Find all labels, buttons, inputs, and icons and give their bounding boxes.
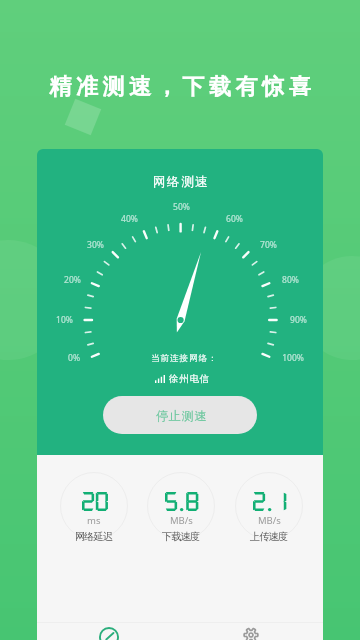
staticText: 80%: [282, 274, 299, 286]
staticText: 70%: [260, 239, 277, 251]
button[interactable]: Settings: [230, 622, 272, 640]
staticText: 90%: [290, 314, 307, 326]
staticText: MB/s: [258, 514, 281, 527]
staticText: 20%: [64, 274, 81, 286]
staticText: 60%: [226, 213, 243, 225]
staticText: 下载速度: [162, 530, 200, 543]
staticText: ms: [87, 514, 101, 527]
staticText: 徐州电信: [169, 373, 211, 385]
staticText: 停止测速: [156, 408, 208, 423]
staticText: 30%: [87, 239, 104, 251]
staticText: 网络延迟: [75, 530, 113, 543]
staticText: 当前连接网络：: [151, 353, 218, 364]
staticText: 50%: [173, 201, 190, 213]
staticText: 上传速度: [250, 530, 288, 543]
staticText: 精准测速，下载有惊喜: [47, 73, 313, 101]
button[interactable]: 停止测速: [103, 396, 257, 434]
button[interactable]: Speed test: [88, 624, 130, 640]
staticText: MB/s: [170, 514, 193, 527]
staticText: 40%: [121, 213, 138, 225]
staticText: 10%: [56, 314, 73, 326]
staticText: 100%: [282, 352, 304, 364]
staticText: 网络测速: [153, 174, 210, 190]
staticText: 0%: [68, 352, 80, 364]
